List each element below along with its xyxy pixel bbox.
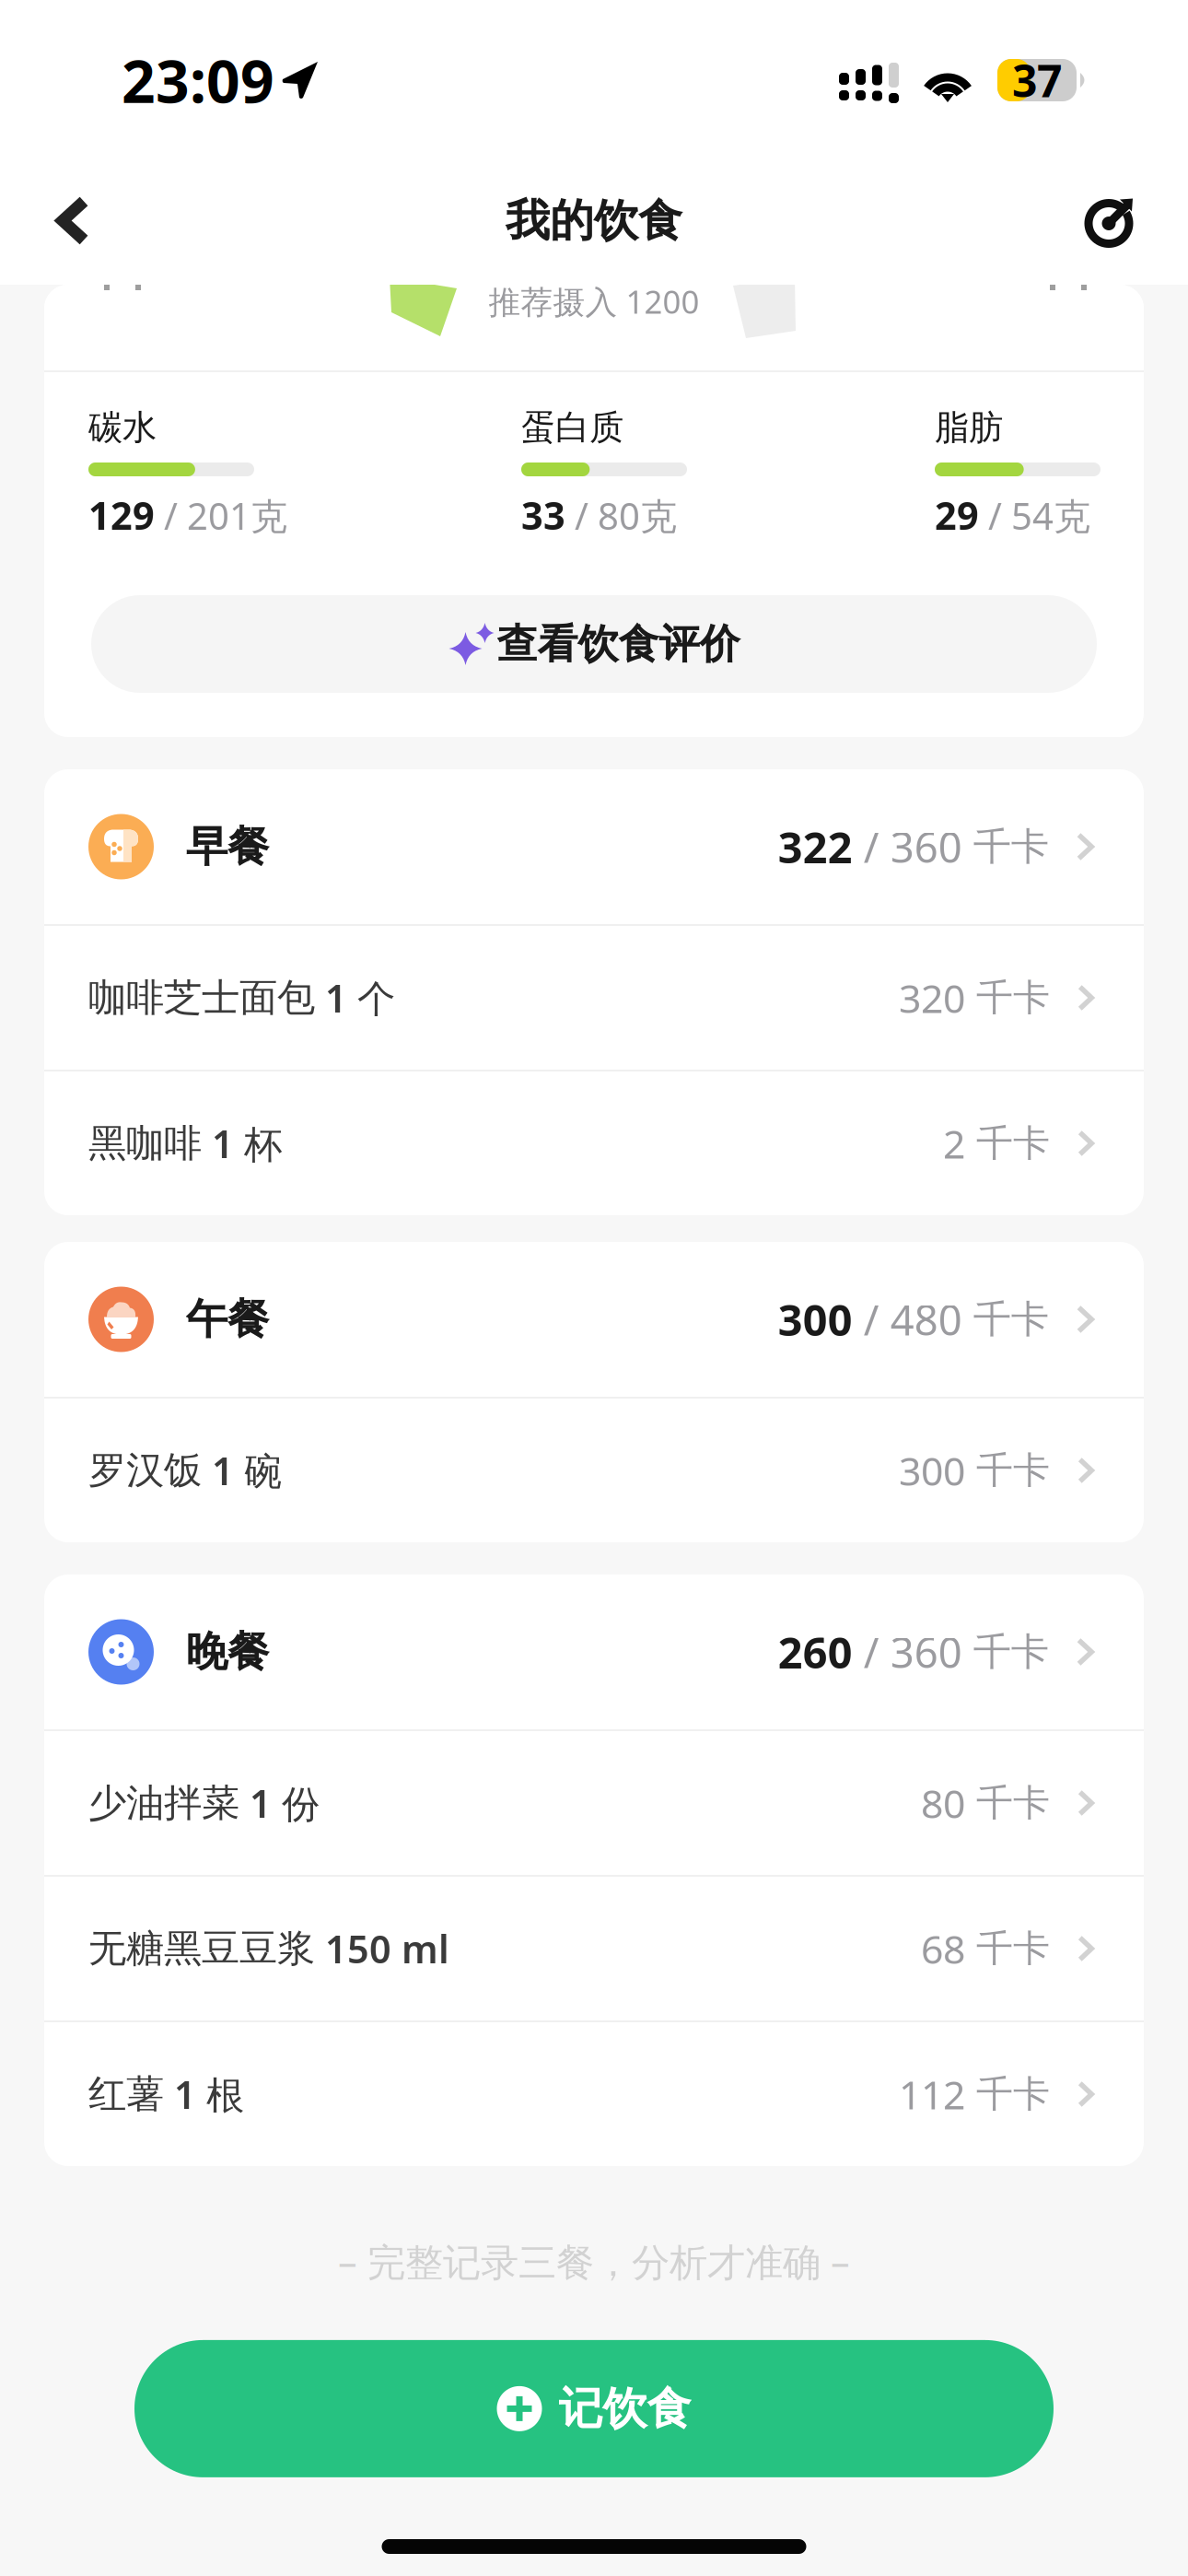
staticText: 推荐摄入 1200 [489, 280, 699, 322]
staticText: / [853, 1624, 890, 1680]
staticText: / [155, 491, 187, 540]
button[interactable]: 记饮食 [134, 2340, 1054, 2477]
button[interactable]: 饮食目标 [1065, 170, 1159, 271]
staticText: / [565, 491, 598, 540]
staticText: 480 [890, 1292, 962, 1347]
staticText: 129 [88, 490, 155, 540]
staticText: 23:09 [122, 41, 274, 119]
staticText: 360 [890, 1624, 962, 1680]
staticText: 千卡 [965, 1926, 1050, 1971]
staticText: 碳水 [88, 406, 157, 449]
button[interactable]: 黑咖啡 [44, 1071, 1144, 1215]
staticText: 黑咖啡 [88, 1120, 202, 1167]
staticText: 记饮食 [559, 2382, 691, 2436]
staticText: 罗汉饭 [88, 1447, 202, 1494]
button[interactable]: 查看饮食评价 [91, 595, 1097, 693]
staticText: 千卡 [965, 1121, 1050, 1166]
staticText: 千卡 [962, 823, 1049, 870]
button[interactable]: 返回 [29, 171, 116, 270]
staticText: 54克 [1011, 491, 1090, 540]
button[interactable]: 早餐 [44, 769, 1144, 924]
staticText: 1 个 [315, 973, 395, 1023]
staticText: 查看饮食评价 [497, 619, 740, 669]
button[interactable]: 少油拌菜 [44, 1731, 1144, 1875]
staticText: / [853, 1292, 890, 1347]
staticText: 少油拌菜 [88, 1780, 239, 1826]
staticText: / [979, 491, 1011, 540]
staticText: 37 [1012, 51, 1062, 109]
staticText: 300 [899, 1444, 965, 1497]
staticText: 68 [921, 1923, 965, 1975]
button[interactable]: 红薯 [44, 2022, 1144, 2166]
button[interactable]: 无糖黑豆豆浆 [44, 1877, 1144, 2020]
staticText: 300 [778, 1291, 853, 1348]
staticText: 千卡 [965, 1780, 1050, 1826]
staticText: – 完整记录三餐，分析才准确 – [338, 2236, 850, 2287]
staticText: 千卡 [962, 1296, 1049, 1343]
staticText: 千卡 [962, 1629, 1049, 1675]
staticText: 1 碗 [202, 1445, 282, 1496]
staticText: 80克 [598, 491, 677, 540]
staticText: 201克 [187, 491, 287, 540]
staticText: 2 [943, 1117, 965, 1170]
staticText: 1 根 [164, 2069, 244, 2119]
staticText: 咖啡芝士面包 [88, 974, 315, 1021]
staticText: 我的饮食 [506, 193, 682, 248]
staticText: 晚餐 [186, 1626, 269, 1678]
staticText: 112 [899, 2068, 965, 2120]
staticText: 260 [778, 1623, 853, 1680]
staticText: 322 [778, 818, 853, 875]
staticText: 80 [921, 1777, 965, 1829]
staticText: 360 [890, 819, 962, 874]
staticText: 千卡 [965, 1448, 1050, 1493]
staticText: 无糖黑豆豆浆 [88, 1925, 315, 1972]
staticText: 150 ml [315, 1923, 449, 1974]
staticText: 千卡 [965, 2071, 1050, 2117]
staticText: 1 杯 [202, 1118, 282, 1169]
staticText: 脂肪 [935, 406, 1003, 449]
staticText: 蛋白质 [521, 406, 623, 449]
button[interactable]: 罗汉饭 [44, 1399, 1144, 1542]
button[interactable]: 午餐 [44, 1242, 1144, 1397]
staticText: 午餐 [186, 1294, 269, 1345]
staticText: 千卡 [965, 975, 1050, 1020]
staticText: 1 份 [239, 1778, 320, 1828]
staticText: 33 [521, 490, 565, 540]
staticText: 早餐 [186, 821, 269, 872]
staticText: 红薯 [88, 2071, 164, 2118]
staticText: 320 [899, 972, 965, 1024]
staticText: / [853, 819, 890, 874]
staticText: 29 [935, 490, 979, 540]
button[interactable]: 晚餐 [44, 1575, 1144, 1729]
button[interactable]: 咖啡芝士面包 [44, 926, 1144, 1070]
